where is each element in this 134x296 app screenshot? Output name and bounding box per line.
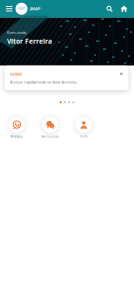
button[interactable]: Home [117, 0, 131, 17]
button[interactable]: Menu [3, 0, 15, 17]
button[interactable]: Search [102, 0, 117, 17]
staticText: HOME [10, 71, 22, 77]
staticText: JMAP [30, 6, 40, 11]
button[interactable]: Fale Conosco [33, 116, 67, 138]
staticText: Acesse rapidamente os itens do menu. [10, 79, 77, 85]
staticText: MAP [18, 7, 25, 10]
button[interactable]: HOME [4, 66, 128, 90]
staticText: Bem-vindo, [7, 30, 27, 35]
button[interactable]: WhatsApp [0, 116, 33, 138]
staticText: WhatsApp [10, 135, 23, 138]
staticText: Fale Conosco [41, 135, 59, 138]
staticText: Vitor Ferreira [7, 37, 52, 45]
staticText: Perfil [80, 135, 88, 138]
button[interactable]: Perfil [67, 116, 100, 138]
